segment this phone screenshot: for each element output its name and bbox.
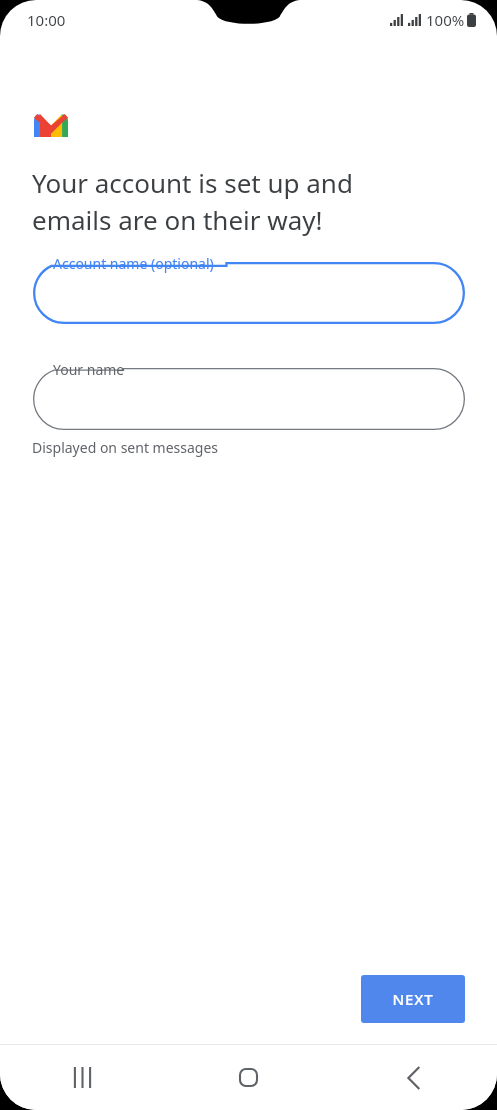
staticText: Your account is set up and emails are on… <box>32 165 353 238</box>
button[interactable]: Your name <box>33 368 465 430</box>
staticText: 100% <box>426 10 465 30</box>
staticText: NEXT <box>392 989 434 1009</box>
button[interactable]: Home <box>165 1045 331 1110</box>
staticText: Your name <box>53 360 125 379</box>
staticText: 10:00 <box>27 10 66 30</box>
button[interactable]: Back <box>331 1045 497 1110</box>
staticText: Displayed on sent messages <box>32 438 219 457</box>
button[interactable]: Recents <box>0 1045 165 1110</box>
staticText: Account name (optional) <box>53 254 214 273</box>
button[interactable]: Account name (optional) <box>33 262 465 324</box>
button[interactable]: NEXT <box>361 975 465 1023</box>
